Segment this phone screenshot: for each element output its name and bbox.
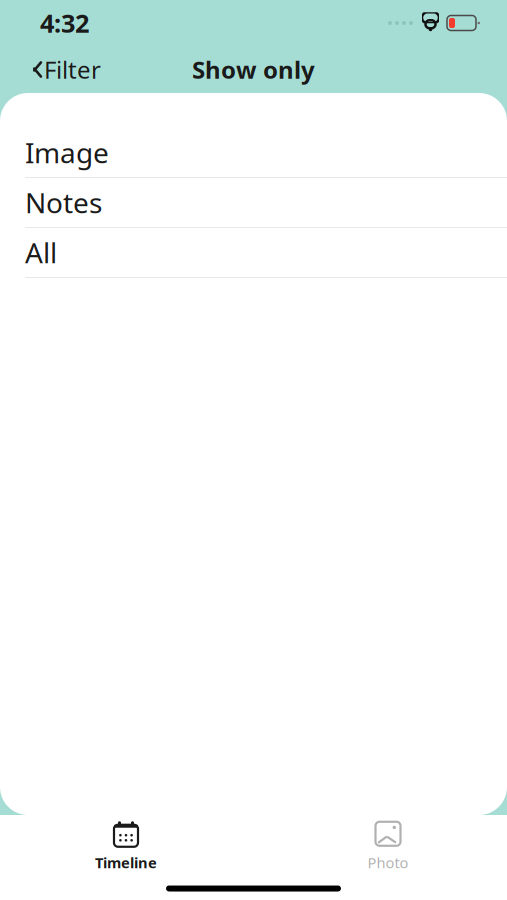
- button[interactable]: Timeline: [66, 817, 186, 875]
- staticText: Filter: [44, 54, 101, 85]
- button[interactable]: Photo: [328, 817, 448, 875]
- button[interactable]: Notes: [0, 178, 507, 227]
- staticText: Show only: [192, 54, 315, 85]
- staticText: 4:32: [40, 6, 89, 40]
- button[interactable]: All: [0, 228, 507, 277]
- staticText: Timeline: [95, 853, 157, 872]
- button[interactable]: Image: [0, 128, 507, 177]
- button[interactable]: Filter: [24, 48, 105, 91]
- staticText: All: [25, 234, 57, 271]
- staticText: Notes: [25, 184, 102, 221]
- staticText: Photo: [367, 853, 408, 872]
- staticText: Image: [25, 134, 109, 171]
